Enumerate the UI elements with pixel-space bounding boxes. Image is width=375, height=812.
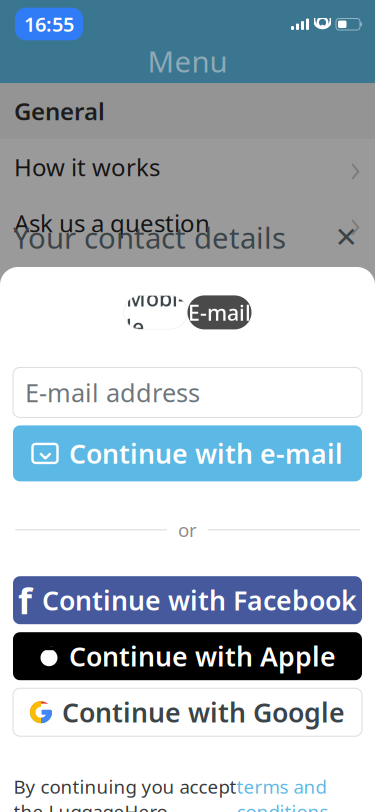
button[interactable]: Close: [326, 217, 366, 257]
staticText: ›: [350, 252, 361, 305]
button[interactable]: Continue with Apple: [13, 632, 362, 680]
staticText: By continuing you accept the LuggageHero: [13, 774, 236, 812]
button[interactable]: ⌄: [13, 425, 362, 481]
button[interactable]: E-mail: [187, 295, 251, 329]
staticText: General: [14, 95, 105, 127]
staticText: or: [178, 517, 197, 542]
button[interactable]: f: [13, 576, 362, 624]
staticText: E-mail address: [25, 376, 200, 409]
staticText: Continue with Facebook: [42, 582, 357, 618]
staticText: terms and conditions: [236, 774, 328, 812]
staticText: ✕: [334, 221, 357, 253]
staticText: Continue with e-mail: [69, 436, 343, 471]
staticText: E-mail: [188, 298, 251, 327]
button[interactable]: How it works: [0, 139, 375, 195]
staticText: Continue with Google: [62, 694, 345, 730]
staticText: Your contact details: [13, 218, 286, 257]
button[interactable]: Mobile: [123, 295, 187, 329]
staticText: Give feedback: [14, 263, 173, 295]
button[interactable]: Ask us a question: [0, 195, 375, 251]
staticText: ⌄: [33, 434, 56, 466]
button[interactable]: terms and conditions: [236, 774, 328, 812]
staticText: Menu: [147, 41, 227, 80]
staticText: ›: [350, 140, 361, 193]
staticText: ›: [350, 196, 361, 249]
button[interactable]: Continue with Google: [13, 688, 362, 736]
button[interactable]: Give feedback: [0, 251, 375, 307]
staticText: Ask us a question: [14, 207, 210, 239]
staticText: How it works: [14, 151, 160, 183]
staticText: 16:55: [24, 11, 74, 37]
staticText: Continue with Apple: [69, 638, 336, 674]
staticText: Mobile: [126, 284, 185, 341]
staticText: f: [18, 576, 32, 624]
